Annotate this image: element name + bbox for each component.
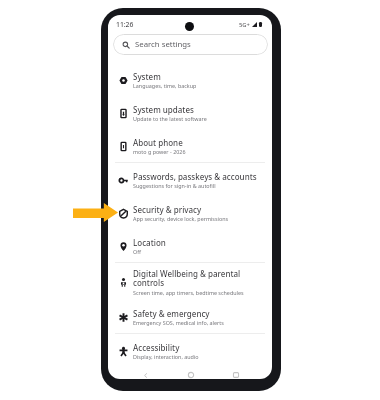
button[interactable]: Search settings: [113, 34, 268, 55]
staticText: moto g power - 2026: [133, 148, 186, 155]
staticText: Search settings: [135, 39, 191, 50]
staticText: Safety & emergency: [133, 308, 210, 319]
staticText: 5G+: [239, 21, 250, 29]
staticText: Accessibility: [133, 342, 180, 353]
staticText: Display, interaction, audio: [133, 353, 199, 360]
button[interactable]: System updates: [108, 96, 272, 129]
button[interactable]: Security & privacy: [108, 196, 272, 229]
button[interactable]: Safety & emergency: [108, 300, 272, 333]
staticText: System: [133, 71, 161, 82]
button[interactable]: System: [108, 63, 272, 96]
staticText: App security, device lock, permissions: [133, 215, 229, 222]
button[interactable]: Back: [122, 368, 168, 379]
staticText: About phone: [133, 137, 183, 148]
button[interactable]: Passwords, passkeys & accounts: [108, 163, 272, 196]
button[interactable]: Home: [168, 368, 213, 379]
staticText: Security & privacy: [133, 204, 202, 215]
staticText: Languages, time, backup: [133, 82, 197, 89]
staticText: Suggestions for sign-in & autofill: [133, 182, 216, 189]
button[interactable]: Digital Wellbeing & parental controls: [108, 263, 272, 300]
staticText: Location: [133, 237, 166, 248]
staticText: 11:26: [116, 20, 134, 29]
button[interactable]: Accessibility: [108, 334, 272, 367]
staticText: System updates: [133, 104, 194, 115]
staticText: Update to the latest software: [133, 115, 207, 122]
staticText: Screen time, app timers, bedtime schedul…: [133, 289, 244, 296]
staticText: Emergency SOS, medical info, alerts: [133, 319, 224, 326]
button[interactable]: About phone: [108, 129, 272, 162]
staticText: Digital Wellbeing & parental controls: [133, 268, 264, 289]
button[interactable]: Recent apps: [213, 368, 258, 379]
staticText: Off: [133, 248, 141, 255]
button[interactable]: Location: [108, 229, 272, 262]
staticText: Passwords, passkeys & accounts: [133, 171, 257, 182]
